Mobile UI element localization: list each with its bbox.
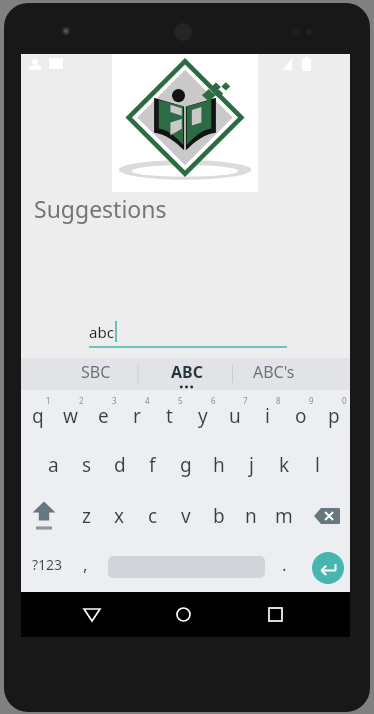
button[interactable]: Home: [161, 592, 206, 637]
staticText: b: [213, 503, 225, 529]
staticText: a: [48, 452, 59, 478]
staticText: 7: [243, 395, 248, 406]
staticText: SBC: [81, 361, 111, 383]
button[interactable]: Space: [103, 542, 269, 592]
button[interactable]: b: [202, 490, 235, 542]
button[interactable]: l: [301, 440, 334, 490]
staticText: .: [282, 553, 287, 576]
staticText: v: [181, 503, 191, 529]
button[interactable]: h: [202, 440, 235, 490]
staticText: 0: [342, 395, 347, 406]
staticText: 1: [46, 395, 51, 406]
staticText: 4: [145, 395, 150, 406]
button[interactable]: 7: [218, 390, 251, 440]
staticText: l: [315, 452, 320, 478]
staticText: e: [98, 403, 109, 429]
staticText: g: [180, 452, 192, 478]
button[interactable]: ABC: [138, 358, 233, 390]
staticText: k: [279, 452, 290, 478]
staticText: p: [328, 403, 340, 429]
button[interactable]: j: [235, 440, 268, 490]
button[interactable]: 3: [87, 390, 120, 440]
button[interactable]: 9: [284, 390, 317, 440]
button[interactable]: 0: [317, 390, 350, 440]
button[interactable]: ,: [69, 542, 102, 592]
staticText: 6: [211, 395, 216, 406]
button[interactable]: 6: [186, 390, 219, 440]
button[interactable]: 8: [251, 390, 284, 440]
staticText: j: [249, 452, 254, 478]
button[interactable]: Recents: [253, 592, 298, 637]
staticText: Suggestions: [34, 193, 167, 224]
button[interactable]: ABC's: [233, 358, 351, 390]
staticText: h: [213, 452, 225, 478]
button[interactable]: 1: [21, 390, 54, 440]
staticText: u: [229, 403, 241, 429]
staticText: w: [63, 403, 78, 429]
button[interactable]: Enter: [304, 542, 350, 592]
button[interactable]: 5: [153, 390, 186, 440]
staticText: 2: [79, 395, 84, 406]
staticText: t: [166, 403, 173, 429]
button[interactable]: g: [169, 440, 202, 490]
staticText: q: [32, 403, 44, 429]
staticText: c: [148, 503, 158, 529]
button[interactable]: 4: [120, 390, 153, 440]
button[interactable]: SBC: [21, 358, 138, 390]
staticText: s: [82, 452, 92, 478]
staticText: z: [82, 503, 91, 529]
button[interactable]: d: [103, 440, 136, 490]
staticText: 5: [178, 395, 183, 406]
staticText: d: [114, 452, 126, 478]
button[interactable]: Backspace: [304, 490, 350, 542]
button[interactable]: .: [268, 542, 301, 592]
staticText: n: [245, 503, 257, 529]
staticText: r: [133, 403, 141, 429]
button[interactable]: ?123: [22, 542, 72, 592]
staticText: ABC: [171, 361, 203, 383]
button[interactable]: n: [234, 490, 267, 542]
staticText: m: [275, 503, 293, 529]
button[interactable]: s: [70, 440, 103, 490]
staticText: abc: [89, 322, 114, 342]
staticText: f: [149, 452, 156, 478]
staticText: o: [295, 403, 307, 429]
staticText: ,: [83, 553, 88, 576]
button[interactable]: a: [37, 440, 70, 490]
button[interactable]: z: [70, 490, 103, 542]
button[interactable]: c: [136, 490, 169, 542]
button[interactable]: 2: [54, 390, 87, 440]
button[interactable]: k: [268, 440, 301, 490]
staticText: 9: [309, 395, 314, 406]
button[interactable]: Shift: [21, 490, 70, 542]
staticText: 3: [112, 395, 117, 406]
staticText: i: [265, 403, 270, 429]
button[interactable]: x: [103, 490, 136, 542]
staticText: 8: [276, 395, 281, 406]
button[interactable]: m: [267, 490, 300, 542]
button[interactable]: Back: [69, 592, 114, 637]
staticText: y: [198, 403, 208, 429]
button[interactable]: v: [169, 490, 202, 542]
staticText: ABC's: [253, 361, 295, 383]
button[interactable]: f: [136, 440, 169, 490]
staticText: ?123: [32, 555, 63, 574]
staticText: x: [114, 503, 125, 529]
